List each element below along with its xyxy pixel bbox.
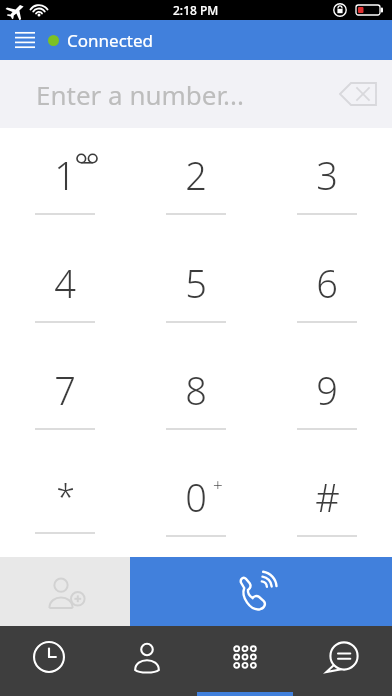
button[interactable]: 1 — [0, 128, 130, 236]
staticText: 5 — [185, 257, 207, 309]
button[interactable]: 9 — [261, 343, 392, 450]
button[interactable]: Backspace — [334, 70, 382, 118]
staticText: 2 — [185, 149, 207, 201]
button[interactable]: Add contact — [0, 557, 130, 626]
button[interactable]: Recent calls — [0, 626, 98, 696]
staticText: + — [213, 473, 223, 496]
staticText: 4 — [54, 257, 76, 309]
button[interactable]: 2 — [130, 128, 261, 236]
staticText: Connected — [67, 29, 153, 52]
button[interactable]: 5 — [130, 236, 261, 343]
button[interactable]: 0 — [130, 450, 261, 557]
staticText: 6 — [316, 257, 338, 309]
button[interactable]: Contacts — [98, 626, 196, 696]
staticText: # — [315, 471, 340, 523]
button[interactable]: 8 — [130, 343, 261, 450]
button[interactable]: 7 — [0, 343, 130, 450]
staticText: Enter a number... — [36, 77, 245, 112]
staticText: 1 — [54, 149, 76, 201]
staticText: * — [56, 474, 75, 520]
staticText: 8 — [185, 364, 207, 416]
button[interactable]: Call — [130, 557, 392, 626]
button[interactable]: 4 — [0, 236, 130, 343]
button[interactable]: Messages — [294, 626, 392, 696]
button[interactable]: 3 — [261, 128, 392, 236]
button[interactable]: * — [0, 450, 130, 557]
staticText: 3 — [316, 149, 338, 201]
staticText: 0 — [185, 471, 207, 523]
staticText: 9 — [316, 364, 338, 416]
button[interactable]: # — [261, 450, 392, 557]
staticText: 7 — [54, 364, 76, 416]
button[interactable]: Keypad — [196, 626, 294, 696]
button[interactable]: Open navigation menu — [8, 23, 42, 57]
button[interactable]: 6 — [261, 236, 392, 343]
staticText: 2:18 PM — [173, 2, 219, 18]
